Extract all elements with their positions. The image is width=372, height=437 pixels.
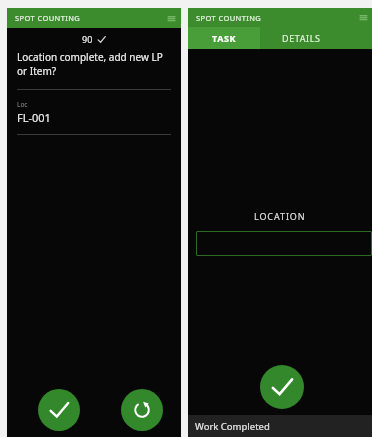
button[interactable]: DETAILS [260, 27, 342, 49]
staticText: Loc [17, 100, 28, 109]
staticText: 90 [82, 33, 93, 45]
staticText: DETAILS [282, 32, 321, 44]
staticText: Work Completed [195, 420, 270, 433]
button[interactable]: Menu [165, 12, 178, 25]
staticText: SPOT COUNTING [15, 13, 81, 23]
button[interactable]: Complete [260, 365, 304, 409]
staticText: FL-001 [17, 110, 51, 125]
button[interactable]: TASK [188, 27, 260, 49]
staticText: SPOT COUNTING [196, 13, 262, 23]
staticText: Location complete, add new LP or Item? [17, 50, 167, 78]
button[interactable]: Refresh [121, 389, 163, 431]
button[interactable]: Menu [357, 11, 370, 24]
button[interactable] [196, 231, 372, 256]
button[interactable]: Confirm [38, 389, 80, 431]
staticText: LOCATION [254, 210, 306, 222]
staticText: TASK [212, 32, 237, 44]
button[interactable]: Work Completed [188, 415, 372, 437]
